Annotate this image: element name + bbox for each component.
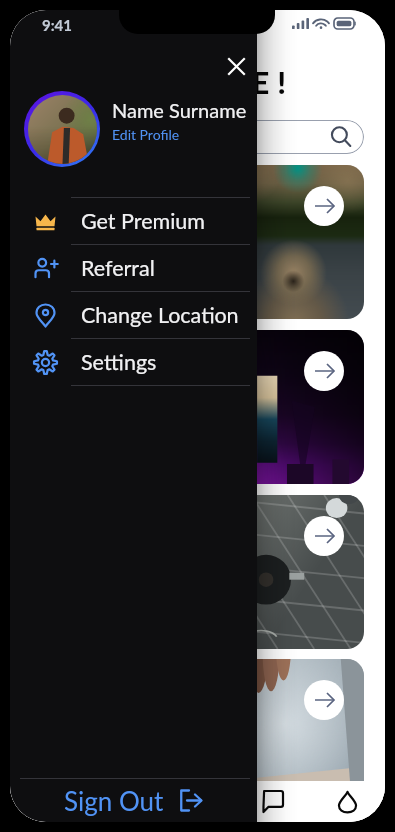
button[interactable]: Referral (10, 245, 257, 291)
button[interactable]: Open (32, 330, 364, 484)
button[interactable]: Open (304, 186, 344, 226)
staticText: Get Premium (81, 208, 206, 234)
button[interactable]: Change Location (10, 292, 257, 338)
button[interactable]: Open (32, 165, 364, 319)
staticText: Referral (81, 255, 155, 281)
staticText: 9:41 (42, 16, 72, 34)
staticText: Settings (81, 349, 157, 375)
button[interactable]: Open (32, 495, 364, 649)
staticText: WELCOME ! (10, 63, 385, 100)
button[interactable]: Open (304, 351, 344, 391)
button[interactable]: Open (304, 516, 344, 556)
button[interactable]: Activity (160, 781, 235, 822)
button[interactable]: Settings (10, 339, 257, 385)
button[interactable]: Get Premium (10, 198, 257, 244)
button[interactable]: Sign Out (10, 779, 257, 822)
button[interactable]: Open (32, 659, 364, 813)
button[interactable] (32, 120, 364, 154)
button[interactable]: Close drawer (219, 49, 254, 84)
button[interactable]: Water (310, 781, 385, 822)
button[interactable]: Edit Profile (112, 126, 180, 143)
staticText: Sign Out (64, 785, 164, 816)
button[interactable]: Messages (235, 781, 310, 822)
staticText: Change Location (81, 302, 239, 328)
staticText: Name Surname (112, 98, 247, 122)
button[interactable]: Open (304, 680, 344, 720)
button[interactable]: Explore (85, 781, 160, 822)
button[interactable]: Home (10, 781, 85, 822)
